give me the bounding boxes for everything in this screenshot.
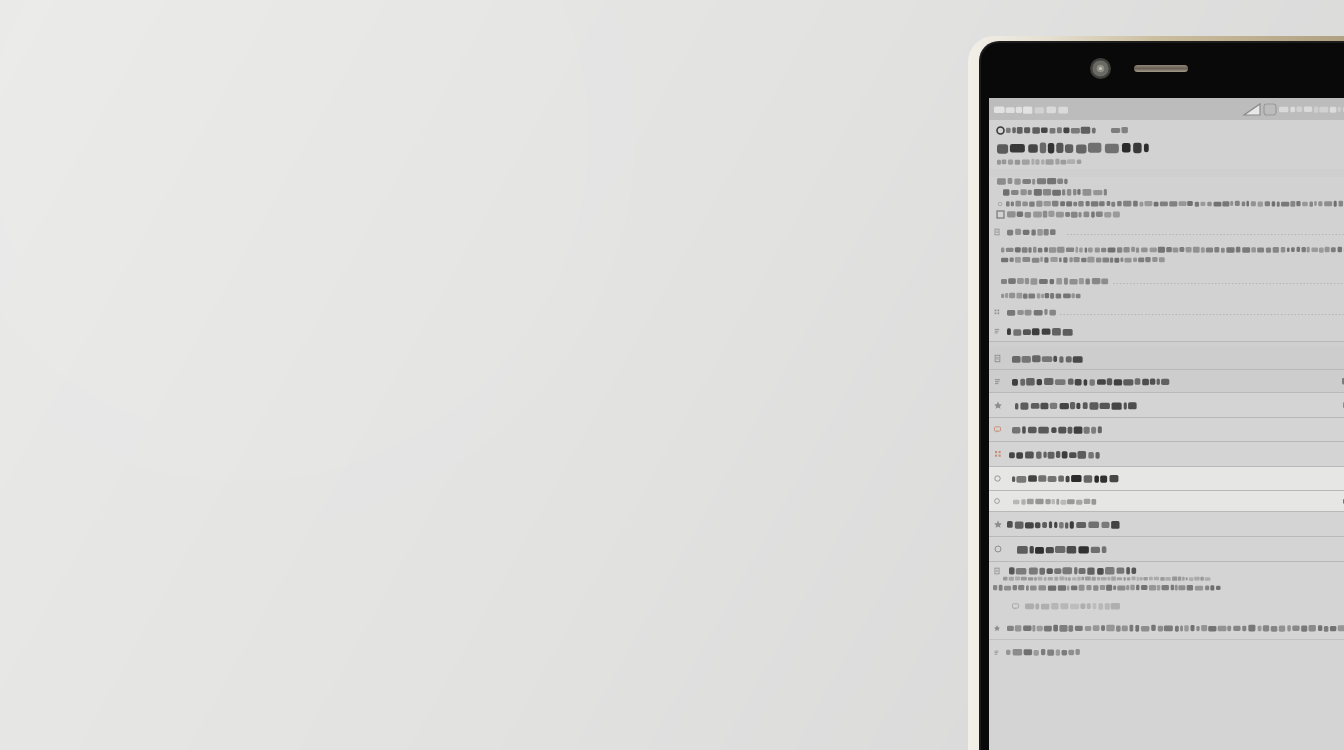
other: Item icon (993, 449, 1003, 459)
button[interactable]: Item icon (989, 537, 1344, 561)
other: Front camera (1090, 58, 1111, 79)
button[interactable]: Item icon (989, 370, 1344, 392)
other: More (993, 649, 1000, 656)
button[interactable]: Item icon (989, 512, 1344, 536)
button[interactable]: Item icon (989, 442, 1344, 466)
other: Item icon (993, 497, 1001, 505)
other: Section icon (993, 327, 1001, 335)
other: Bullet (997, 201, 1003, 207)
button[interactable]: Section icon (989, 321, 1344, 341)
button[interactable]: Item icon (989, 418, 1344, 441)
button[interactable]: Checkbox (997, 211, 1004, 218)
other: Item icon (993, 519, 1003, 529)
other: Field icon (993, 308, 1001, 316)
other: Item icon (993, 474, 1002, 483)
button[interactable]: Item icon (989, 467, 1344, 490)
other: Item icon (993, 400, 1003, 410)
other: Item icon (993, 377, 1002, 386)
button[interactable]: Field icon (989, 223, 1344, 241)
button[interactable] (989, 272, 1344, 290)
other: Field icon (993, 228, 1001, 236)
other: Status dot (997, 127, 1004, 134)
other: Comment (1011, 602, 1020, 611)
button[interactable]: Field icon (989, 303, 1344, 321)
other: Attachment (993, 567, 1001, 575)
button[interactable]: Item icon (989, 393, 1344, 417)
other: SIM card (1264, 104, 1276, 115)
other: Item icon (993, 425, 1002, 434)
button[interactable]: Comment (989, 595, 1344, 617)
other: Item icon (993, 354, 1002, 363)
button[interactable]: Entry (989, 617, 1344, 639)
other: Item icon (993, 544, 1003, 554)
button[interactable]: More (989, 640, 1344, 664)
other: Entry (993, 624, 1001, 632)
button[interactable]: Item icon (989, 347, 1344, 369)
button[interactable]: Attachment (989, 562, 1344, 595)
other: Signal strength (1244, 104, 1260, 115)
button[interactable]: Item icon (989, 491, 1344, 511)
